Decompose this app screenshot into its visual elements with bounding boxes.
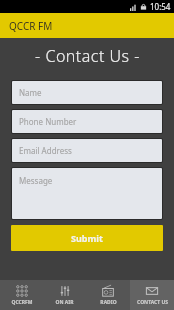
staticText: Name [19, 87, 42, 98]
button[interactable]: Submit [11, 225, 163, 251]
button[interactable]: RADIO [86, 280, 130, 310]
staticText: Email Address [19, 145, 72, 156]
staticText: RADIO [100, 299, 117, 306]
button[interactable]: ON AIR [43, 280, 86, 310]
button[interactable]: QCCR FM [0, 13, 174, 38]
button[interactable]: QCCRFM [0, 280, 43, 310]
button[interactable]: CONTACT US [130, 280, 174, 310]
button[interactable]: Email Address [12, 139, 162, 162]
staticText: ON AIR [55, 299, 74, 306]
staticText: Phone Number [19, 116, 77, 127]
button[interactable]: Phone Number [12, 110, 162, 133]
staticText: CONTACT US [137, 299, 168, 306]
button[interactable]: Name [12, 81, 162, 104]
staticText: 10:54 [150, 1, 171, 12]
staticText: - Contact Us - [35, 45, 140, 67]
staticText: Message [19, 175, 53, 186]
button[interactable]: Message [12, 168, 162, 219]
staticText: Submit [71, 232, 103, 244]
staticText: QCCR FM [9, 19, 53, 33]
staticText: QCCRFM [11, 299, 33, 306]
